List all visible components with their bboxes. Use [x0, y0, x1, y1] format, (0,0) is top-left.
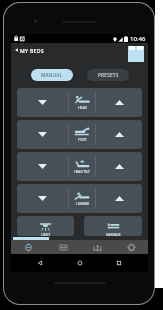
- button[interactable]: HEAD TILT: [69, 152, 95, 181]
- button[interactable]: MASSAGE: [84, 216, 142, 236]
- button[interactable]: Remote: [11, 240, 46, 254]
- button[interactable]: Lower HEAD: [17, 88, 68, 117]
- button[interactable]: Lower LUMBAR: [17, 184, 68, 213]
- staticText: HEAD: [78, 106, 87, 110]
- button[interactable]: LIGHT: [17, 216, 74, 236]
- button[interactable]: Recent apps: [109, 254, 129, 272]
- button[interactable]: Raise HEAD TILT: [96, 152, 142, 181]
- button[interactable]: Back: [30, 254, 50, 272]
- button[interactable]: LUMBAR: [69, 184, 95, 213]
- button[interactable]: Home: [70, 254, 90, 272]
- staticText: MASSAGE: [106, 233, 121, 236]
- button[interactable]: My bed: [127, 45, 144, 62]
- button[interactable]: Settings: [114, 240, 148, 254]
- button[interactable]: MANUAL: [31, 69, 73, 81]
- button[interactable]: Sleep: [80, 240, 114, 254]
- staticText: 10:46: [130, 35, 146, 43]
- staticText: LIGHT: [41, 233, 51, 236]
- staticText: FOOT: [78, 138, 87, 142]
- button[interactable]: FOOT: [69, 120, 95, 149]
- staticText: LUMBAR: [76, 202, 89, 206]
- staticText: MY BEDS: [20, 47, 44, 54]
- staticText: HEAD TILT: [74, 170, 90, 174]
- button[interactable]: Raise LUMBAR: [96, 184, 142, 213]
- button[interactable]: Presets: [46, 240, 80, 254]
- staticText: PRESETS: [98, 72, 119, 79]
- button[interactable]: Raise HEAD: [96, 88, 142, 117]
- button[interactable]: MY BEDS: [11, 43, 47, 57]
- button[interactable]: Lower FOOT: [17, 120, 68, 149]
- button[interactable]: Lower HEAD TILT: [17, 152, 68, 181]
- button[interactable]: HEAD: [69, 88, 95, 117]
- button[interactable]: PRESETS: [87, 69, 129, 81]
- button[interactable]: Raise FOOT: [96, 120, 142, 149]
- staticText: beds: [134, 47, 144, 53]
- staticText: MANUAL: [41, 72, 63, 79]
